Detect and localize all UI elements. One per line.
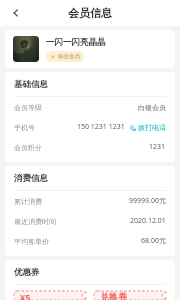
- staticText: 一闪一闪亮晶晶: [46, 37, 106, 48]
- staticText: 消费信息: [14, 173, 48, 184]
- button[interactable]: 会员积分: [14, 137, 166, 157]
- button[interactable]: 最近消费时间: [14, 211, 166, 231]
- staticText: 会员积分: [14, 143, 42, 152]
- staticText: 1231: [149, 142, 166, 152]
- button[interactable]: 兑换券: [94, 291, 166, 300]
- staticText: 铂金会员: [58, 53, 80, 60]
- button[interactable]: 累计消费: [14, 191, 166, 211]
- staticText: 150 1231 1231: [77, 122, 125, 132]
- staticText: 平均客单价: [14, 237, 49, 246]
- staticText: 会员信息: [68, 6, 112, 20]
- button[interactable]: 会员等级: [14, 97, 166, 117]
- staticText: 手机号: [14, 123, 35, 132]
- staticText: 白银会员: [138, 103, 166, 112]
- button[interactable]: 手机号: [14, 117, 166, 137]
- staticText: 68.00元: [141, 236, 166, 246]
- button[interactable]: Back: [6, 3, 26, 23]
- staticText: 累计消费: [14, 197, 42, 206]
- button[interactable]: 拨打电话: [130, 123, 166, 132]
- staticText: 基础信息: [14, 79, 48, 90]
- staticText: 会员等级: [14, 103, 42, 112]
- button[interactable]: ¥5: [14, 291, 86, 300]
- staticText: 拨打电话: [138, 123, 166, 132]
- staticText: 最近消费时间: [14, 217, 56, 226]
- staticText: 99999.00元: [129, 196, 166, 206]
- staticText: 兑换券: [100, 291, 127, 300]
- staticText: 优惠券: [14, 267, 40, 278]
- button[interactable]: 一闪一闪亮晶晶: [5, 30, 175, 68]
- staticText: 2020.12.01: [130, 216, 166, 226]
- staticText: ¥5: [20, 291, 31, 300]
- button[interactable]: 平均客单价: [14, 231, 166, 251]
